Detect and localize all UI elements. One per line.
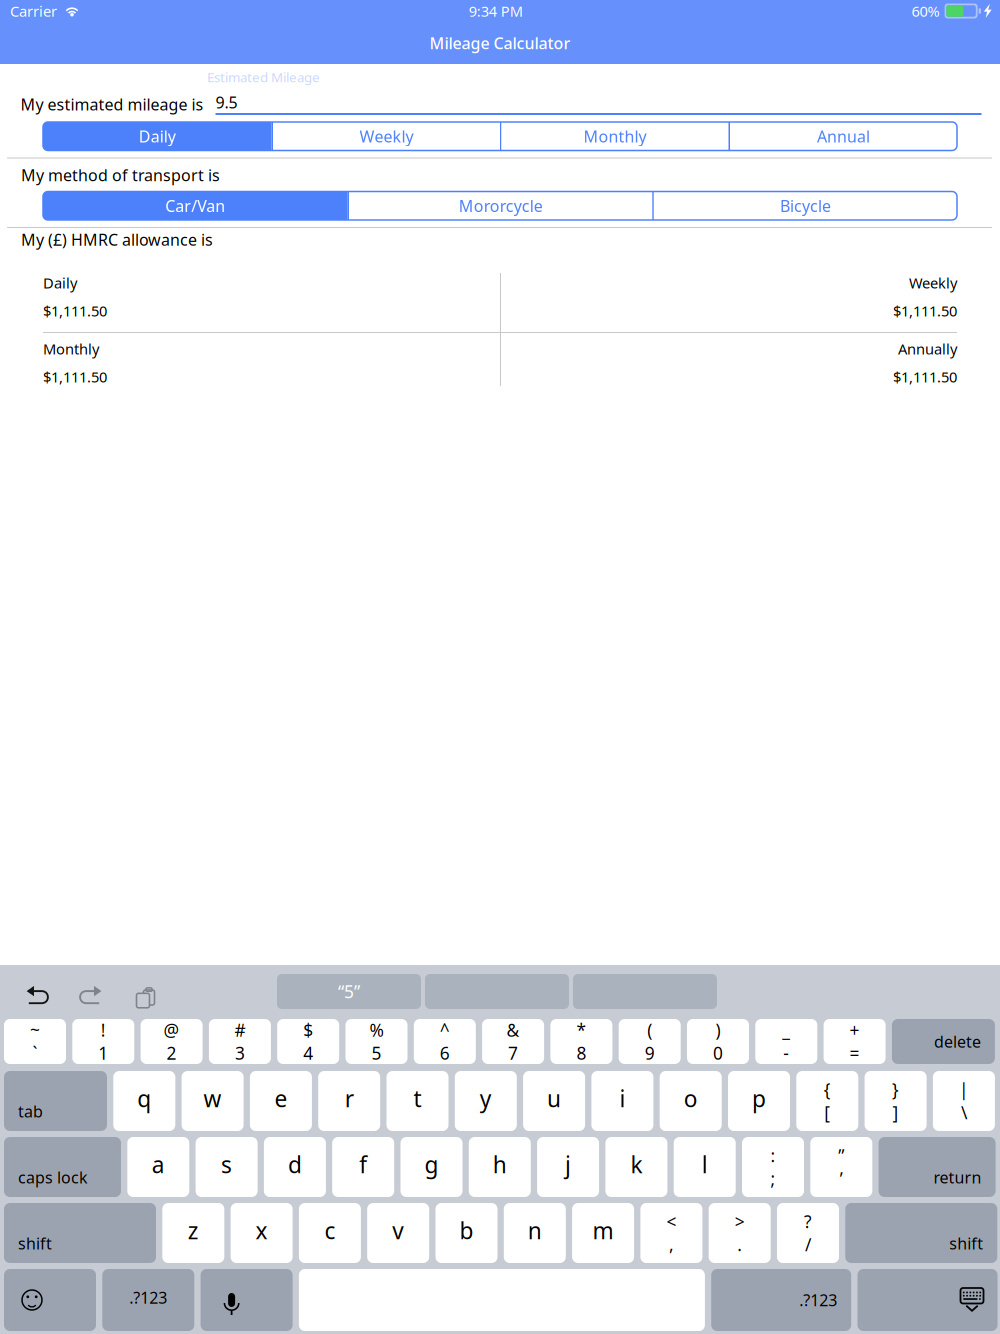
staticText: x	[256, 1215, 268, 1245]
button[interactable]: m	[572, 1203, 634, 1263]
staticText: Daily	[139, 126, 176, 147]
button[interactable]: v	[367, 1203, 429, 1263]
button[interactable]: p	[728, 1071, 790, 1131]
button[interactable]: f	[332, 1137, 394, 1197]
staticText: _	[782, 1018, 790, 1041]
button[interactable]: )	[687, 1019, 749, 1064]
button[interactable]: q	[113, 1071, 175, 1131]
button[interactable]: Weekly	[273, 122, 500, 150]
staticText: =	[850, 1041, 860, 1064]
button[interactable]: d	[264, 1137, 326, 1197]
button[interactable]: ~	[4, 1019, 66, 1064]
button[interactable]: a	[127, 1137, 189, 1197]
staticText: My (£) HMRC allowance is	[21, 229, 213, 250]
button[interactable]: t	[386, 1071, 448, 1131]
button[interactable]: n	[504, 1203, 566, 1263]
button[interactable]: ”	[810, 1137, 872, 1197]
button[interactable]: shift	[4, 1203, 156, 1263]
button[interactable]: Dictation	[201, 1269, 293, 1331]
button[interactable]: y	[455, 1071, 517, 1131]
button[interactable]: return	[879, 1137, 996, 1197]
button[interactable]: j	[537, 1137, 599, 1197]
button[interactable]: delete	[892, 1019, 995, 1064]
staticText: <	[666, 1210, 676, 1233]
button[interactable]: w	[182, 1071, 244, 1131]
staticText: }	[892, 1078, 899, 1101]
staticText: return	[934, 1167, 982, 1188]
button[interactable]: h	[469, 1137, 531, 1197]
button[interactable]: :	[742, 1137, 804, 1197]
button[interactable]: Undo	[26, 975, 51, 1007]
staticText: :	[770, 1144, 775, 1167]
button[interactable]: &	[482, 1019, 544, 1064]
staticText: My estimated mileage is	[20, 94, 203, 115]
button[interactable]: l	[674, 1137, 736, 1197]
button[interactable]: #	[209, 1019, 271, 1064]
button[interactable]: $	[277, 1019, 339, 1064]
button[interactable]: .?123	[711, 1269, 851, 1331]
button[interactable]: *	[550, 1019, 612, 1064]
button[interactable]: %	[345, 1019, 407, 1064]
button[interactable]: e	[250, 1071, 312, 1131]
staticText: z	[188, 1215, 199, 1245]
staticText: )	[715, 1018, 720, 1041]
button[interactable]: ^	[414, 1019, 476, 1064]
button[interactable]: Monthly	[501, 122, 728, 150]
button[interactable]: tab	[4, 1071, 107, 1131]
button[interactable]: @	[141, 1019, 203, 1064]
button[interactable]: ?	[777, 1203, 839, 1263]
staticText: l	[702, 1149, 708, 1179]
button[interactable]: Daily	[43, 122, 271, 150]
button[interactable]: r	[318, 1071, 380, 1131]
button[interactable]: Car/Van	[43, 191, 348, 220]
staticText: s	[221, 1149, 232, 1179]
button[interactable]: (	[619, 1019, 681, 1064]
button[interactable]: caps lock	[4, 1137, 121, 1197]
staticText: ;	[770, 1167, 775, 1190]
button[interactable]: |	[933, 1071, 995, 1131]
button[interactable]: shift	[845, 1203, 997, 1263]
staticText: $1,111.50	[893, 301, 957, 320]
button[interactable]: {	[796, 1071, 858, 1131]
button[interactable]: !	[72, 1019, 134, 1064]
button[interactable]: x	[231, 1203, 293, 1263]
button[interactable]: g	[400, 1137, 462, 1197]
button[interactable]: Emoji	[4, 1269, 96, 1331]
button[interactable]: i	[591, 1071, 653, 1131]
staticText: ^	[440, 1018, 450, 1041]
staticText: shift	[949, 1233, 983, 1254]
button[interactable]: }	[865, 1071, 927, 1131]
button[interactable]: Paste	[132, 977, 152, 1005]
button[interactable]: Annual	[730, 122, 957, 150]
button[interactable]: <	[640, 1203, 702, 1263]
button[interactable]: o	[660, 1071, 722, 1131]
staticText: \	[961, 1101, 967, 1124]
button[interactable]: >	[709, 1203, 771, 1263]
button[interactable]: .?123	[102, 1269, 194, 1331]
button[interactable]: k	[605, 1137, 667, 1197]
staticText: -	[783, 1041, 789, 1064]
staticText: k	[630, 1149, 642, 1179]
button[interactable]: Bicycle	[654, 191, 957, 220]
button[interactable]: Redo	[77, 975, 102, 1007]
staticText: !	[101, 1018, 106, 1041]
button[interactable]: “5”	[277, 974, 421, 1009]
staticText: ”	[838, 1144, 844, 1167]
staticText: %	[369, 1018, 383, 1041]
button[interactable]: _	[755, 1019, 817, 1064]
button[interactable]: s	[196, 1137, 258, 1197]
button[interactable]: z	[162, 1203, 224, 1263]
staticText: 3	[235, 1041, 245, 1064]
staticText: $	[303, 1018, 313, 1041]
button[interactable]: c	[299, 1203, 361, 1263]
staticText: Carrier	[10, 1, 57, 21]
button[interactable]: b	[435, 1203, 497, 1263]
button[interactable]: +	[824, 1019, 886, 1064]
button[interactable]: Mororcycle	[349, 191, 652, 220]
button[interactable]: Hide keyboard	[857, 1269, 997, 1331]
staticText: delete	[934, 1031, 981, 1052]
button[interactable]: u	[523, 1071, 585, 1131]
